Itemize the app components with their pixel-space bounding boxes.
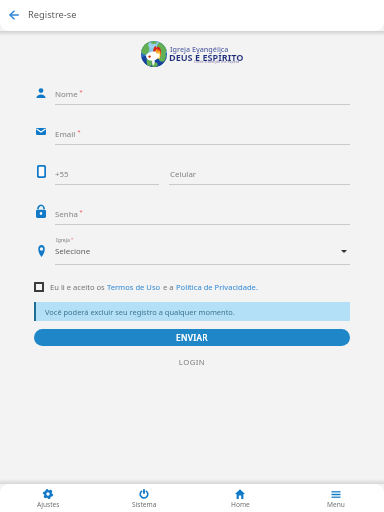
staticText: * [70, 237, 74, 242]
staticText: e a [161, 282, 176, 292]
button[interactable]: Igreja [0, 0, 384, 268]
staticText: Onde a Bênção lhe espera [194, 59, 240, 64]
staticText: Igreja Evangélica [170, 44, 229, 54]
staticText: Eu li e aceito os [50, 282, 107, 292]
staticText: Email [55, 129, 76, 140]
button[interactable]: LOGIN [0, 357, 384, 368]
button[interactable]: Ajustes [0, 484, 96, 512]
staticText: Home [231, 500, 250, 509]
staticText: ENVIAR [176, 332, 208, 343]
staticText: Menu [327, 500, 345, 509]
button[interactable]: Sistema [96, 484, 192, 512]
staticText: * [76, 128, 81, 136]
staticText: Registre-se [28, 8, 77, 21]
button[interactable]: Menu [288, 484, 384, 512]
staticText: Nome [55, 89, 78, 100]
staticText: Celular [170, 169, 197, 180]
staticText: DEUS É ESPÍRITO [169, 51, 244, 63]
button[interactable]: Política de Privacidade. [176, 282, 258, 292]
staticText: Ajustes [37, 500, 60, 509]
button[interactable]: +55 [0, 0, 384, 188]
staticText: Igreja [56, 237, 70, 244]
button[interactable]: Back [7, 7, 23, 23]
staticText: * [78, 208, 83, 216]
staticText: +55 [55, 169, 69, 180]
staticText: Selecione [55, 246, 91, 257]
button[interactable]: Senha [0, 0, 384, 228]
staticText: Sistema [132, 500, 157, 509]
staticText: Senha [55, 209, 78, 220]
button[interactable]: Home [192, 484, 288, 512]
button[interactable]: Eu li e aceito os [34, 282, 258, 292]
button[interactable]: Termos de Uso [107, 282, 161, 292]
button[interactable]: Nome [0, 0, 384, 108]
button[interactable]: Email [0, 0, 384, 148]
staticText: Você poderá excluir seu registro a qualq… [45, 307, 235, 317]
staticText: * [78, 88, 83, 96]
button[interactable]: ENVIAR [34, 329, 350, 346]
